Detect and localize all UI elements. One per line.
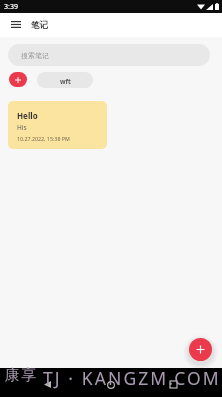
button[interactable]: Back <box>38 375 57 394</box>
button[interactable]: 搜索笔记 <box>8 44 210 66</box>
staticText: TJ · KANGZM.COM <box>43 366 221 390</box>
button[interactable]: Menu <box>8 16 24 32</box>
button[interactable]: Home <box>101 375 120 394</box>
staticText: 10.27.2022, 15:38 PM <box>17 135 70 142</box>
button[interactable]: Hello <box>8 101 107 149</box>
button[interactable]: wft <box>37 72 93 88</box>
staticText: 笔记 <box>31 20 48 31</box>
staticText: wft <box>60 77 71 86</box>
staticText: Hello <box>17 110 38 121</box>
button[interactable]: Add category <box>9 72 27 87</box>
staticText: 3:39 <box>4 2 18 12</box>
staticText: 搜索笔记 <box>21 51 49 60</box>
button[interactable]: Recents <box>164 375 183 394</box>
staticText: 康享 <box>4 366 37 385</box>
button[interactable]: Add note <box>189 338 212 361</box>
staticText: His <box>17 123 27 132</box>
